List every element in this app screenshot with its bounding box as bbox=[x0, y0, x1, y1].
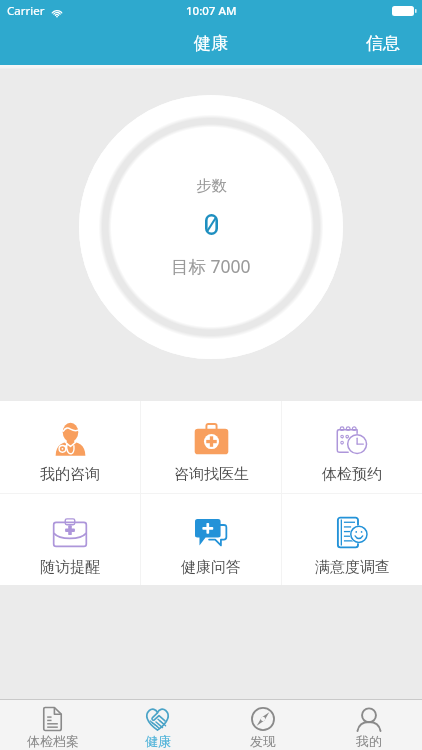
staticText: 满意度调查 bbox=[315, 558, 390, 577]
button[interactable]: 健康问答 bbox=[141, 494, 281, 585]
staticText: 步数 bbox=[196, 176, 227, 196]
staticText: 健康问答 bbox=[181, 558, 241, 577]
button[interactable]: 体检档案 bbox=[0, 700, 105, 750]
staticText: 我的 bbox=[356, 733, 382, 749]
button[interactable]: 咨询找医生 bbox=[141, 401, 281, 493]
button[interactable]: 满意度调查 bbox=[282, 494, 422, 585]
staticText: Carrier bbox=[7, 3, 45, 19]
button[interactable]: 体检预约 bbox=[282, 401, 422, 493]
staticText: 随访提醒 bbox=[40, 558, 100, 577]
other: Battery bbox=[392, 6, 416, 16]
staticText: 目标 7000 bbox=[171, 254, 251, 278]
button[interactable]: 随访提醒 bbox=[0, 494, 140, 585]
button[interactable]: 发现 bbox=[210, 700, 316, 750]
staticText: 10:07 AM bbox=[186, 3, 237, 19]
staticText: 我的咨询 bbox=[40, 465, 100, 484]
button[interactable]: 我的 bbox=[316, 700, 422, 750]
staticText: 体检档案 bbox=[27, 733, 79, 749]
staticText: 发现 bbox=[250, 733, 276, 749]
button[interactable]: 我的咨询 bbox=[0, 401, 140, 493]
staticText: 健康 bbox=[145, 733, 171, 749]
button[interactable]: 健康 bbox=[105, 700, 210, 750]
staticText: 健康 bbox=[194, 33, 228, 54]
staticText: 体检预约 bbox=[322, 465, 382, 484]
staticText: 信息 bbox=[366, 33, 400, 54]
staticText: 咨询找医生 bbox=[174, 465, 249, 484]
button[interactable]: 信息 bbox=[352, 27, 422, 60]
